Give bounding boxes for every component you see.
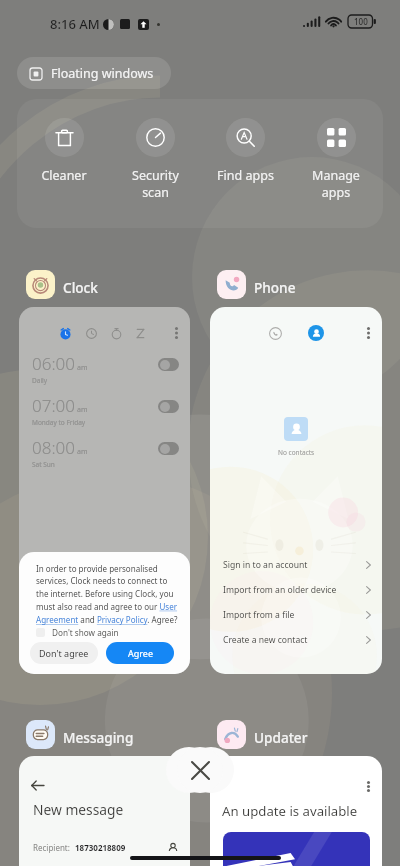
button[interactable]: Manage apps <box>293 99 379 228</box>
button[interactable]: Previous <box>188 747 234 793</box>
staticText: Daily <box>32 376 48 385</box>
button[interactable]: Messaging <box>19 719 134 749</box>
button[interactable]: Create a new contact <box>223 627 371 652</box>
staticText: Sign in to an account <box>223 559 308 571</box>
staticText: Import from an older device <box>223 584 337 596</box>
staticText: am <box>77 447 88 457</box>
staticText: 06:00 <box>32 352 75 375</box>
staticText: No contacts <box>278 448 315 457</box>
button[interactable]: Import from an older device <box>223 577 371 602</box>
staticText: Sat Sun <box>32 460 55 469</box>
staticText: Agree <box>128 647 153 659</box>
staticText: Clock <box>63 278 98 297</box>
button[interactable]: Import from a file <box>223 602 371 627</box>
staticText: Security scan <box>132 167 179 200</box>
button[interactable]: Agree <box>106 642 174 664</box>
button[interactable]: Close all <box>177 747 223 793</box>
staticText: Manage apps <box>312 167 360 200</box>
button[interactable]: Next <box>166 747 212 793</box>
staticText: An update is available <box>222 802 358 820</box>
button[interactable]: Clock <box>19 269 98 299</box>
button[interactable]: Updater <box>210 719 308 749</box>
staticText: Find apps <box>217 167 274 184</box>
staticText: 8:16 AM <box>50 15 100 33</box>
staticText: Messaging <box>63 728 134 747</box>
button[interactable]: New message <box>19 756 190 866</box>
button[interactable]: Sign in to an account <box>223 552 371 577</box>
button[interactable]: Cleaner <box>21 99 107 228</box>
staticText: Phone <box>254 278 296 297</box>
staticText: Cleaner <box>41 167 87 184</box>
staticText: Updater <box>254 728 308 747</box>
button[interactable]: An update is available <box>210 756 382 866</box>
button[interactable]: Floating windows <box>17 57 171 89</box>
staticText: 18730218809 <box>75 842 126 853</box>
staticText: Don't agree <box>39 647 89 659</box>
staticText: Import from a file <box>223 609 295 621</box>
button[interactable]: Find apps <box>202 99 288 228</box>
button[interactable]: 06:00 <box>19 307 190 674</box>
staticText: Create a new contact <box>223 634 308 646</box>
staticText: Floating windows <box>51 65 154 82</box>
button[interactable]: Don't agree <box>30 642 98 664</box>
button[interactable]: Security scan <box>112 99 198 228</box>
staticText: New message <box>33 800 124 819</box>
staticText: 08:00 <box>32 436 75 459</box>
staticText: 100 <box>354 16 368 27</box>
button[interactable]: No contacts <box>210 307 382 674</box>
staticText: am <box>77 363 88 373</box>
staticText: am <box>77 405 88 415</box>
staticText: 07:00 <box>32 394 75 417</box>
staticText: Monday to Friday <box>32 418 86 427</box>
button[interactable]: Phone <box>210 269 296 299</box>
staticText: Recipient: <box>33 842 70 853</box>
staticText: Don't show again <box>52 627 119 638</box>
staticText: In order to provide personalised service… <box>36 563 181 626</box>
